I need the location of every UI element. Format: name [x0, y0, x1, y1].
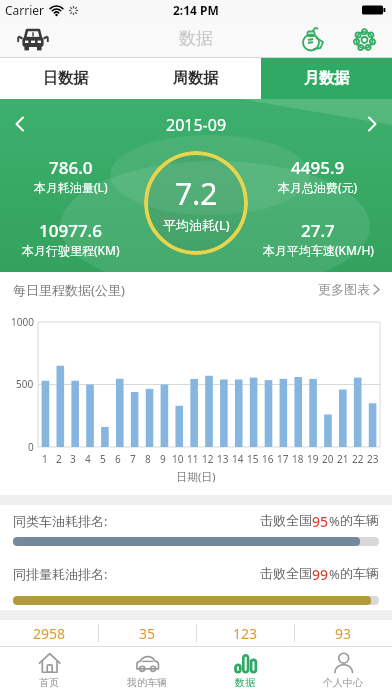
staticText: 3: [70, 452, 76, 466]
staticText: 同类车油耗排名:: [13, 512, 108, 530]
button[interactable]: 月数据: [261, 58, 392, 99]
staticText: 11: [187, 452, 199, 466]
staticText: 19: [307, 452, 319, 466]
staticText: 本月行驶里程(KM): [22, 242, 120, 258]
staticText: 99: [312, 565, 329, 584]
button[interactable]: 93: [295, 620, 392, 646]
button[interactable]: [367, 116, 377, 132]
staticText: 日期(日): [176, 469, 216, 484]
staticText: 20: [322, 452, 334, 466]
staticText: 10977.6: [39, 219, 102, 242]
staticText: 93: [335, 624, 352, 643]
staticText: 4: [85, 452, 91, 466]
staticText: 7: [130, 452, 136, 466]
button[interactable]: 日数据: [0, 58, 130, 99]
staticText: 1000: [11, 315, 34, 329]
staticText: %: [329, 565, 340, 583]
staticText: 9: [160, 452, 166, 466]
staticText: 10: [172, 452, 184, 466]
staticText: 个人中心: [323, 676, 363, 689]
staticText: 14: [232, 452, 244, 466]
button[interactable]: 个人中心: [294, 647, 392, 696]
button[interactable]: 数据: [196, 647, 294, 696]
staticText: 2:14 PM: [173, 2, 219, 18]
button[interactable]: 我的车辆: [98, 647, 196, 696]
staticText: 本月平均车速(KM/H): [263, 242, 374, 258]
button[interactable]: [351, 26, 378, 53]
staticText: 平均油耗(L): [163, 216, 230, 234]
staticText: 18: [292, 452, 304, 466]
staticText: 数据: [235, 676, 255, 689]
staticText: 21: [337, 452, 349, 466]
staticText: 12: [202, 452, 214, 466]
staticText: 22: [352, 452, 364, 466]
button[interactable]: [16, 26, 50, 52]
staticText: 数据: [179, 28, 213, 49]
staticText: 周数据: [173, 69, 218, 88]
button[interactable]: 周数据: [130, 58, 261, 99]
staticText: 我的车辆: [127, 676, 167, 689]
staticText: 17: [277, 452, 289, 466]
staticText: 2958: [33, 624, 66, 643]
button[interactable]: 更多图表: [318, 281, 380, 297]
staticText: 月数据: [304, 69, 349, 88]
staticText: 6: [115, 452, 121, 466]
staticText: 16: [262, 452, 274, 466]
staticText: 95: [312, 512, 329, 531]
staticText: 8: [145, 452, 151, 466]
staticText: 2015-09: [166, 114, 227, 136]
staticText: 35: [139, 624, 156, 643]
staticText: 0: [28, 440, 34, 454]
button[interactable]: 35: [99, 620, 196, 646]
button[interactable]: 123: [197, 620, 294, 646]
staticText: 的车辆: [340, 512, 379, 528]
staticText: 1: [42, 452, 48, 466]
button[interactable]: [299, 25, 327, 53]
button[interactable]: [15, 116, 25, 132]
button[interactable]: 2958: [0, 620, 98, 646]
staticText: Carrier: [5, 2, 45, 18]
staticText: 23: [367, 452, 379, 466]
staticText: 同排量耗油排名:: [13, 565, 108, 583]
staticText: 4495.9: [291, 156, 345, 179]
staticText: 更多图表: [318, 281, 370, 297]
staticText: 的车辆: [340, 565, 379, 581]
staticText: 13: [217, 452, 229, 466]
staticText: 15: [247, 452, 259, 466]
staticText: 击败全国: [260, 512, 312, 528]
staticText: 2: [56, 452, 62, 466]
staticText: 首页: [39, 676, 59, 689]
staticText: 5: [100, 452, 106, 466]
staticText: 本月耗油量(L): [34, 179, 108, 195]
staticText: 7.2: [175, 173, 218, 214]
staticText: 日数据: [43, 69, 88, 88]
staticText: 786.0: [49, 156, 93, 179]
staticText: %: [329, 512, 340, 530]
staticText: 27.7: [301, 219, 335, 242]
staticText: 每日里程数据(公里): [13, 281, 125, 299]
button[interactable]: 首页: [0, 647, 98, 696]
staticText: 500: [16, 377, 34, 391]
staticText: 123: [233, 624, 258, 643]
staticText: 本月总油费(元): [278, 179, 358, 195]
staticText: 击败全国: [260, 565, 312, 581]
